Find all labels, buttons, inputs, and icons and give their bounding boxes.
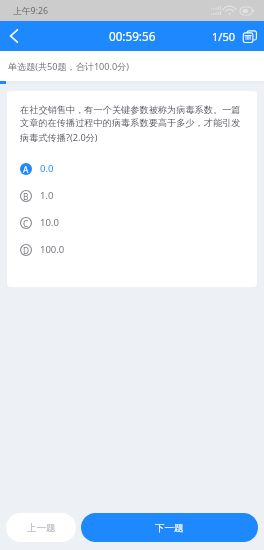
staticText: A — [23, 164, 29, 175]
button[interactable]: 上一题 — [6, 513, 76, 542]
staticText: 1.0 — [40, 189, 54, 202]
button[interactable]: D — [20, 236, 247, 263]
staticText: 上一题 — [27, 522, 56, 534]
button[interactable]: B — [20, 182, 247, 209]
staticText: B — [23, 191, 29, 202]
staticText: 10.0 — [40, 216, 59, 229]
staticText: 00:59:56 — [109, 28, 156, 44]
button[interactable]: 1/50 — [212, 29, 258, 44]
button[interactable]: Back — [0, 22, 28, 50]
staticText: 1/50 — [212, 29, 235, 44]
staticText: 上午9:26 — [13, 5, 49, 17]
staticText: 0.0 — [40, 162, 54, 175]
staticText: 下一题 — [155, 522, 184, 534]
staticText: D — [23, 245, 30, 256]
staticText: 100.0 — [40, 243, 65, 256]
button[interactable]: C — [20, 209, 247, 236]
button[interactable]: A — [20, 155, 247, 182]
button[interactable]: 下一题 — [81, 513, 258, 542]
staticText: C — [23, 218, 29, 229]
staticText: 在社交销售中，有一个关键参数被称为病毒系数。一篇文章的在传播过程中的病毒系数要高… — [20, 104, 247, 143]
staticText: 单选题(共50题，合计100.0分) — [8, 60, 129, 72]
